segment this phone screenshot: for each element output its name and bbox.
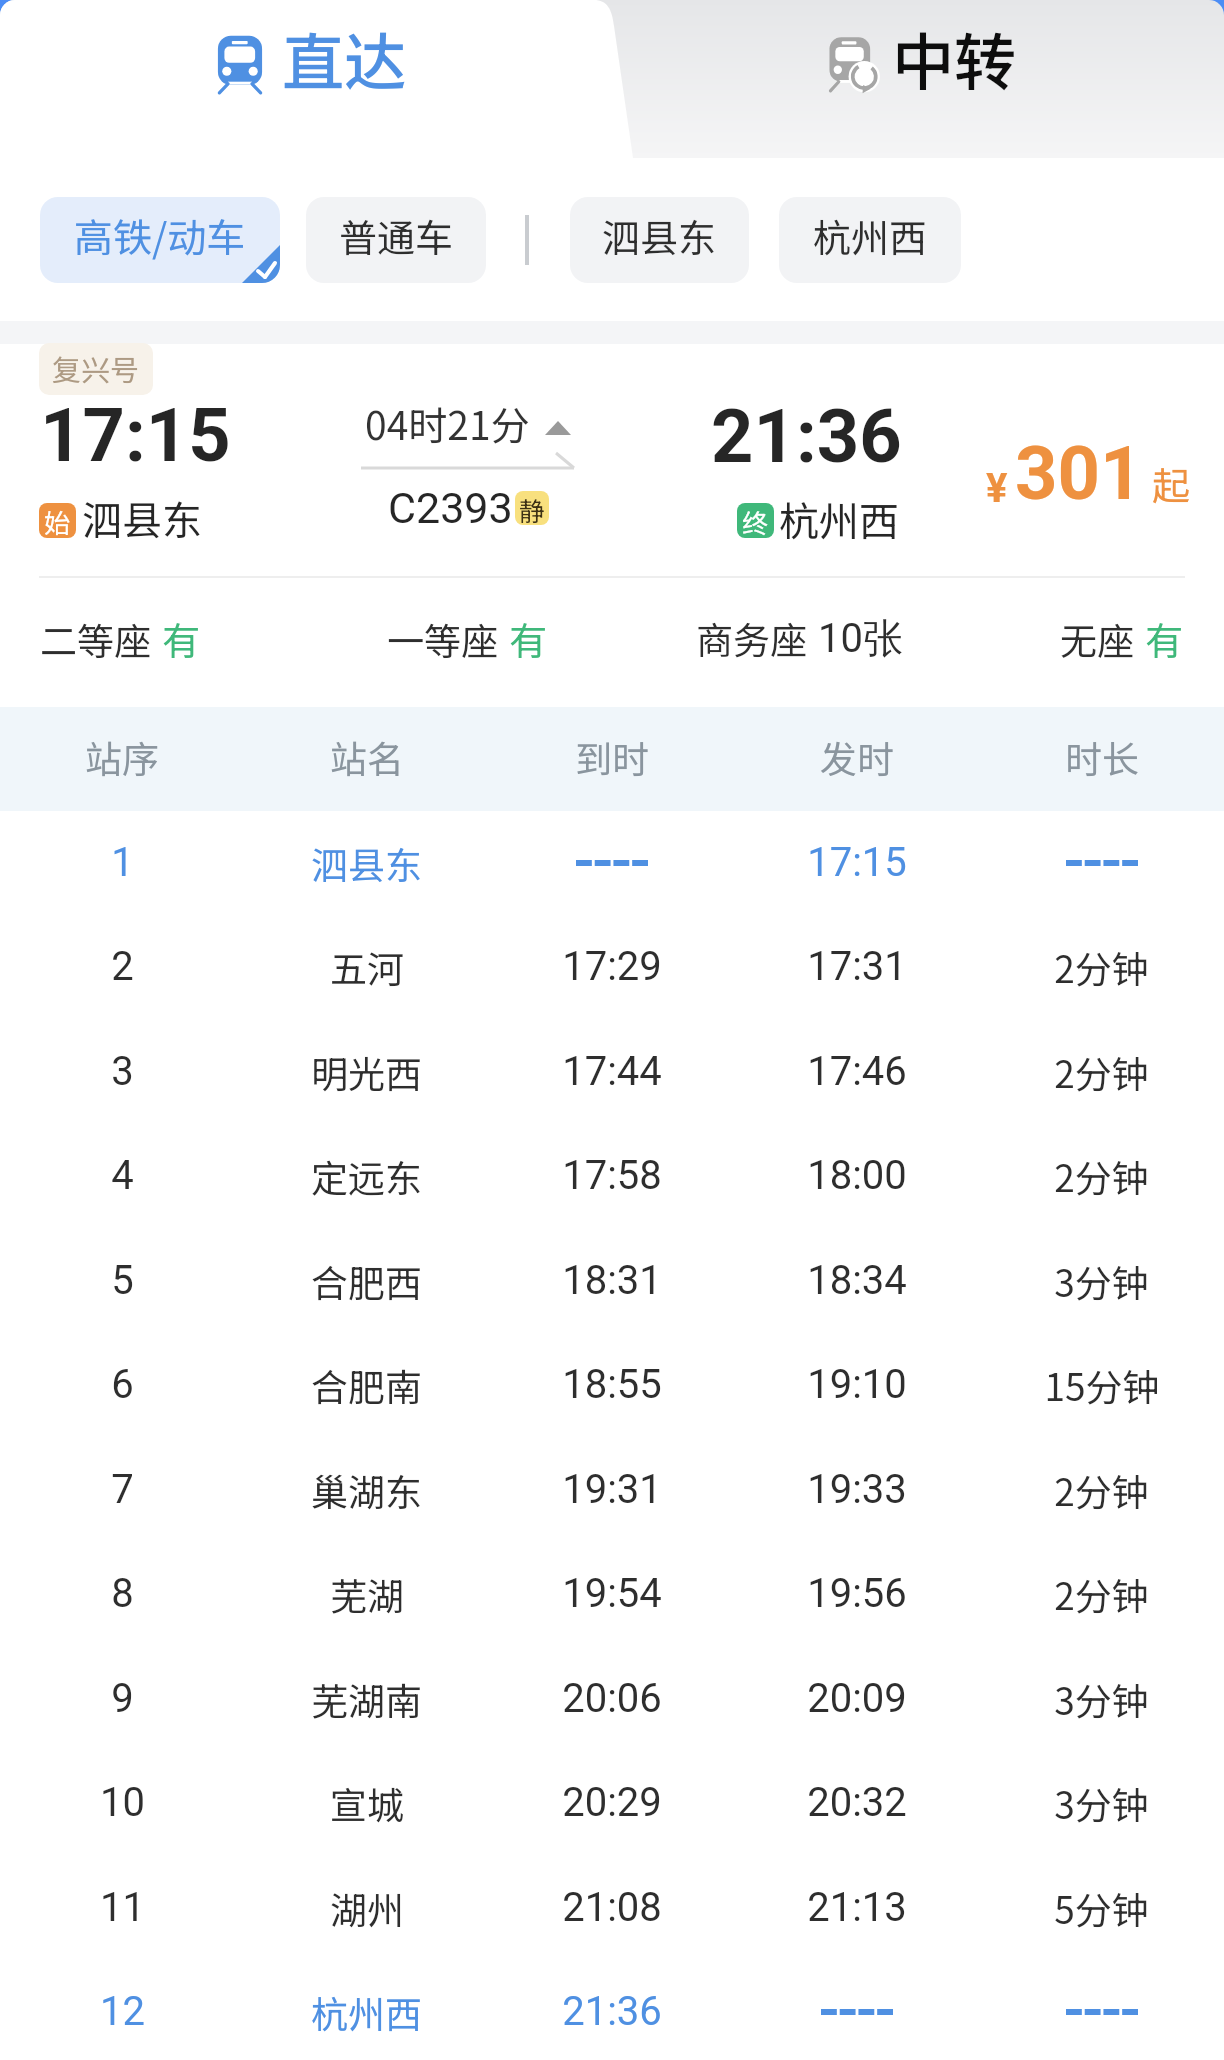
staticText: 静 (519, 491, 546, 525)
staticText: 20:32 (807, 1779, 907, 1826)
button[interactable]: 泗县东 (570, 197, 749, 283)
staticText: 19:56 (807, 1570, 907, 1617)
staticText: 2 (111, 943, 134, 990)
staticText: 2分钟 (1054, 1149, 1149, 1203)
staticText: 直达 (282, 13, 407, 103)
button[interactable]: 12 (0, 1959, 1224, 2060)
staticText: 04时21分 (365, 395, 530, 451)
staticText: 普通车 (339, 208, 454, 263)
staticText: 杭州西 (779, 490, 899, 548)
staticText: 有 (1145, 611, 1184, 666)
staticText: 21:36 (711, 393, 902, 480)
button[interactable]: 8 (0, 1541, 1224, 1646)
staticText: 复兴号 (52, 347, 140, 389)
staticText: 2分钟 (1054, 1463, 1149, 1517)
staticText: 4 (111, 1152, 134, 1199)
staticText: 一等座 (387, 612, 498, 666)
staticText: 芜湖 (330, 1567, 404, 1621)
staticText: 商务座 (696, 611, 807, 665)
staticText: 3分钟 (1054, 1254, 1149, 1308)
staticText: 5分钟 (1054, 1881, 1149, 1935)
staticText: 起 (1152, 456, 1191, 511)
staticText: 终 (742, 503, 769, 538)
staticText: 11 (100, 1884, 145, 1931)
button[interactable]: 1 (0, 810, 1224, 915)
staticText: 7 (111, 1466, 134, 1513)
staticText: 19:33 (807, 1466, 907, 1513)
staticText: 19:54 (562, 1570, 662, 1617)
staticText: 6 (111, 1361, 134, 1408)
staticText: 中转 (892, 13, 1017, 103)
staticText: 301 (1015, 430, 1143, 517)
staticText: 2分钟 (1054, 1567, 1149, 1621)
staticText: 站名 (330, 730, 404, 784)
staticText: ¥ (986, 465, 1008, 512)
staticText: 定远东 (311, 1149, 422, 1203)
staticText: 18:00 (807, 1152, 907, 1199)
button[interactable]: 10 (0, 1750, 1224, 1855)
staticText: 17:46 (807, 1048, 907, 1095)
staticText: 芜湖南 (311, 1672, 422, 1726)
staticText: 始 (44, 503, 71, 538)
button[interactable]: 普通车 (306, 197, 486, 283)
staticText: 五河 (330, 940, 404, 994)
staticText: 10张 (818, 613, 903, 663)
button[interactable]: 高铁/动车 (40, 197, 280, 283)
staticText: 湖州 (330, 1881, 404, 1935)
staticText: 10 (100, 1779, 145, 1826)
staticText: 泗县东 (602, 208, 717, 263)
staticText: 宣城 (330, 1776, 404, 1830)
staticText: 21:08 (562, 1884, 662, 1931)
staticText: 17:15 (40, 392, 231, 479)
staticText: 泗县东 (82, 489, 202, 547)
staticText: 合肥西 (311, 1254, 422, 1308)
staticText: 时长 (1065, 730, 1139, 784)
staticText: 高铁/动车 (74, 207, 246, 263)
staticText: 巢湖东 (311, 1463, 422, 1517)
staticText: 19:31 (562, 1466, 662, 1513)
staticText: 有 (509, 611, 548, 666)
staticText: 杭州西 (813, 208, 928, 263)
staticText: 20:09 (807, 1675, 907, 1722)
staticText: 17:29 (562, 943, 662, 990)
staticText: 20:29 (562, 1779, 662, 1826)
staticText: 17:31 (807, 943, 907, 990)
button[interactable]: 3 (0, 1019, 1224, 1124)
staticText: 有 (162, 611, 201, 666)
staticText: 19:10 (807, 1361, 907, 1408)
staticText: 8 (111, 1570, 134, 1617)
staticText: 二等座 (40, 612, 151, 666)
button[interactable]: 中转 transfer tab (622, 0, 1224, 158)
staticText: 3 (111, 1048, 134, 1095)
button[interactable]: 4 (0, 1123, 1224, 1228)
staticText: 17:58 (562, 1152, 662, 1199)
staticText: 到时 (575, 730, 649, 784)
staticText: 20:06 (562, 1675, 662, 1722)
button[interactable]: 5 (0, 1228, 1224, 1333)
staticText: 21:13 (807, 1884, 907, 1931)
button[interactable]: 直达 direct tab (0, 0, 634, 158)
staticText: 杭州西 (311, 1985, 422, 2039)
staticText: 17:44 (562, 1048, 662, 1095)
staticText: 无座 (1060, 612, 1134, 666)
staticText: 21:36 (562, 1988, 662, 2035)
staticText: 合肥南 (311, 1358, 422, 1412)
staticText: 3分钟 (1054, 1672, 1149, 1726)
button[interactable]: 2 (0, 914, 1224, 1019)
button[interactable]: 9 (0, 1646, 1224, 1751)
staticText: 发时 (820, 730, 894, 784)
staticText: 1 (111, 839, 134, 886)
staticText: C2393 (388, 483, 513, 533)
staticText: 泗县东 (311, 836, 422, 890)
button[interactable]: 6 (0, 1332, 1224, 1437)
staticText: 2分钟 (1054, 940, 1149, 994)
staticText: 9 (111, 1675, 134, 1722)
staticText: 15分钟 (1044, 1358, 1160, 1412)
button[interactable]: 7 (0, 1437, 1224, 1542)
staticText: 2分钟 (1054, 1045, 1149, 1099)
staticText: 5 (111, 1257, 134, 1304)
button[interactable]: 杭州西 (779, 197, 961, 283)
button[interactable]: 11 (0, 1855, 1224, 1960)
staticText: 17:15 (807, 839, 907, 886)
staticText: 3分钟 (1054, 1776, 1149, 1830)
